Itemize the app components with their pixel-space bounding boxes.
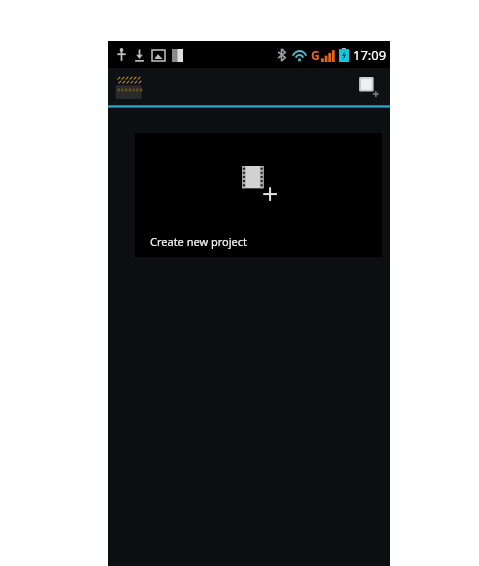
staticText: G [311,47,320,63]
button[interactable]: New project [352,70,386,104]
staticText: 17:09 [353,46,387,64]
staticText: Create new project [150,234,248,249]
button[interactable]: App icon, home [111,69,147,105]
button[interactable]: Create new project [135,133,382,257]
